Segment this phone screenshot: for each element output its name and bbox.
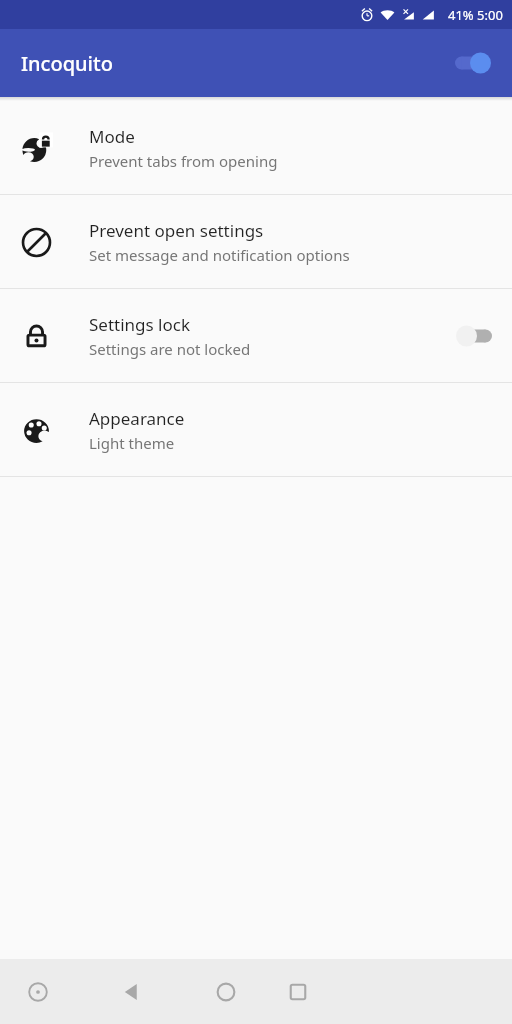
button[interactable]: Back (76, 959, 185, 1024)
staticText: Settings lock (89, 313, 191, 336)
button[interactable]: Recents (267, 959, 328, 1024)
staticText: Prevent tabs from opening (89, 151, 278, 171)
button[interactable]: Home (185, 959, 267, 1024)
button[interactable]: Appearance (0, 383, 512, 476)
button[interactable]: Prevent open settings (0, 195, 512, 288)
button[interactable]: Settings lock (0, 289, 512, 382)
staticText: Appearance (89, 407, 185, 430)
staticText: Prevent open settings (89, 219, 264, 242)
button[interactable]: Toggle Incoquito (446, 43, 498, 83)
staticText: Incoquito (21, 50, 113, 77)
staticText: Settings are not locked (89, 339, 251, 359)
button[interactable]: Assistant (0, 959, 76, 1024)
staticText: Light theme (89, 433, 175, 453)
button[interactable]: Mode (0, 101, 512, 194)
staticText: Mode (89, 125, 135, 148)
staticText: Set message and notification options (89, 245, 350, 265)
staticText: 41% 5:00 (448, 6, 503, 24)
